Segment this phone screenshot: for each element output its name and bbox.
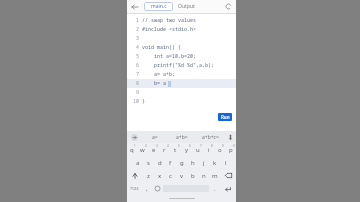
staticText: void main() { — [142, 44, 182, 51]
button[interactable]: . — [210, 182, 220, 195]
staticText: 10 — [132, 98, 139, 105]
staticText: d — [158, 159, 162, 167]
staticText: j — [203, 159, 205, 167]
staticText: a+b+c= — [202, 134, 219, 141]
staticText: 4 — [167, 144, 169, 148]
staticText: f — [169, 159, 172, 167]
button[interactable]: a — [132, 156, 143, 169]
staticText: v — [180, 172, 184, 180]
staticText: 3 — [156, 144, 158, 148]
staticText: m — [212, 172, 218, 180]
button[interactable]: Clipboard — [127, 131, 141, 143]
staticText: o — [218, 146, 222, 154]
button[interactable]: 5 — [170, 143, 181, 156]
button[interactable]: 4 — [159, 143, 170, 156]
staticText: k — [213, 159, 217, 167]
button[interactable]: 3 — [148, 143, 159, 156]
staticText: int a=10,b=20; — [142, 53, 197, 60]
staticText: n — [202, 172, 206, 180]
staticText: 5 — [135, 53, 139, 60]
staticText: x — [158, 172, 162, 180]
button[interactable]: Output — [173, 2, 199, 11]
button[interactable]: Backspace — [220, 169, 236, 182]
staticText: w — [140, 146, 145, 154]
staticText: l — [225, 159, 227, 167]
button[interactable]: Run — [218, 113, 232, 121]
button[interactable]: c — [165, 169, 176, 182]
staticText: 3 — [135, 35, 139, 42]
staticText: p — [229, 146, 233, 154]
button[interactable]: Emoji — [152, 182, 162, 195]
staticText: z — [147, 172, 150, 180]
button[interactable]: ?123 — [127, 182, 142, 195]
staticText: 8 — [135, 80, 139, 87]
button[interactable]: 9 — [214, 143, 225, 156]
button[interactable]: v — [176, 169, 187, 182]
button[interactable]: 6 — [181, 143, 192, 156]
staticText: i — [208, 146, 210, 154]
button[interactable]: 1 — [127, 143, 137, 156]
button[interactable]: b — [187, 169, 198, 182]
staticText: Output — [178, 3, 195, 10]
staticText: } — [142, 98, 146, 105]
button[interactable]: Voice input — [224, 131, 236, 143]
staticText: g — [180, 159, 184, 167]
button[interactable]: m — [209, 169, 220, 182]
button[interactable]: n — [198, 169, 209, 182]
button[interactable]: g — [176, 156, 187, 169]
staticText: a= — [152, 134, 158, 141]
staticText: 9 — [135, 89, 139, 96]
staticText: 7 — [200, 144, 202, 148]
button[interactable]: z — [143, 169, 154, 182]
staticText: 2 — [145, 144, 147, 148]
staticText: ?123 — [130, 186, 139, 191]
button[interactable]: 7 — [192, 143, 203, 156]
staticText: 2 — [135, 26, 139, 33]
button[interactable]: Refresh — [223, 1, 234, 12]
staticText: 1 — [134, 144, 136, 148]
staticText: t — [174, 146, 177, 154]
button[interactable]: d — [154, 156, 165, 169]
button[interactable]: 8 — [203, 143, 214, 156]
button[interactable]: j — [198, 156, 209, 169]
staticText: h — [191, 159, 195, 167]
button[interactable]: a+b= — [168, 131, 196, 143]
staticText: r — [163, 146, 166, 154]
staticText: u — [196, 146, 200, 154]
staticText: b — [191, 172, 195, 180]
staticText: . — [214, 185, 216, 193]
staticText: e — [152, 146, 156, 154]
button[interactable]: 2 — [137, 143, 148, 156]
button[interactable]: main.c — [144, 2, 173, 11]
staticText: #include <stdio.h> — [142, 26, 197, 33]
button[interactable]: Shift — [127, 169, 143, 182]
button[interactable]: h — [187, 156, 198, 169]
staticText: a — [136, 159, 140, 167]
button[interactable]: l — [220, 156, 231, 169]
staticText: 6 — [189, 144, 191, 148]
staticText: 0 — [233, 144, 235, 148]
staticText: y — [185, 146, 189, 154]
button[interactable]: k — [209, 156, 220, 169]
staticText: a+b= — [176, 134, 188, 141]
staticText: 7 — [135, 71, 139, 78]
staticText: 1 — [135, 17, 139, 24]
staticText: q — [130, 146, 134, 154]
button[interactable]: f — [165, 156, 176, 169]
button[interactable]: a+b+c= — [196, 131, 224, 143]
button[interactable]: Enter — [220, 182, 236, 195]
button[interactable]: 0 — [225, 143, 236, 156]
button[interactable]: x — [154, 169, 165, 182]
button[interactable]: a= — [141, 131, 168, 143]
staticText: 9 — [222, 144, 224, 148]
staticText: 8 — [211, 144, 213, 148]
staticText: // swap two values — [142, 17, 197, 24]
staticText: b= a — [142, 80, 167, 87]
staticText: c — [169, 172, 172, 180]
button[interactable]: s — [143, 156, 154, 169]
button[interactable]: Back — [129, 1, 140, 12]
button[interactable]: , — [142, 182, 152, 195]
staticText: Run — [221, 114, 230, 120]
staticText: s — [147, 159, 150, 167]
